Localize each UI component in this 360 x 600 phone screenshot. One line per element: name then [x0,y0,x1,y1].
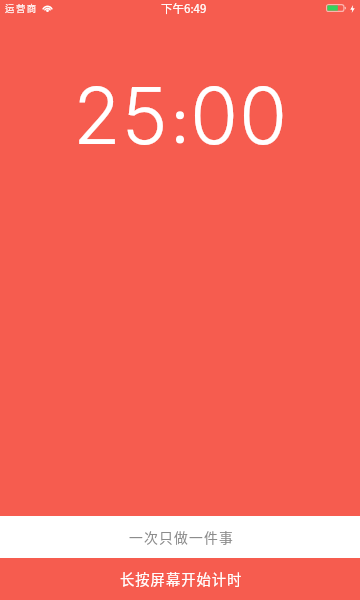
other: Battery [326,4,346,12]
staticText: 00 [190,68,288,162]
button[interactable]: 长按屏幕开始计时 [0,558,360,600]
other: Wi-Fi [42,4,53,12]
button[interactable]: 长按屏幕开始计时 [0,0,360,600]
other: Charging [350,5,355,13]
button[interactable]: 一次只做一件事 [0,516,360,558]
staticText: 下午6:49 [161,0,207,17]
staticText: 运营商 [5,1,38,15]
staticText: 一次只做一件事 [129,527,234,547]
staticText: 25 [73,68,169,162]
staticText: 长按屏幕开始计时 [120,568,243,589]
